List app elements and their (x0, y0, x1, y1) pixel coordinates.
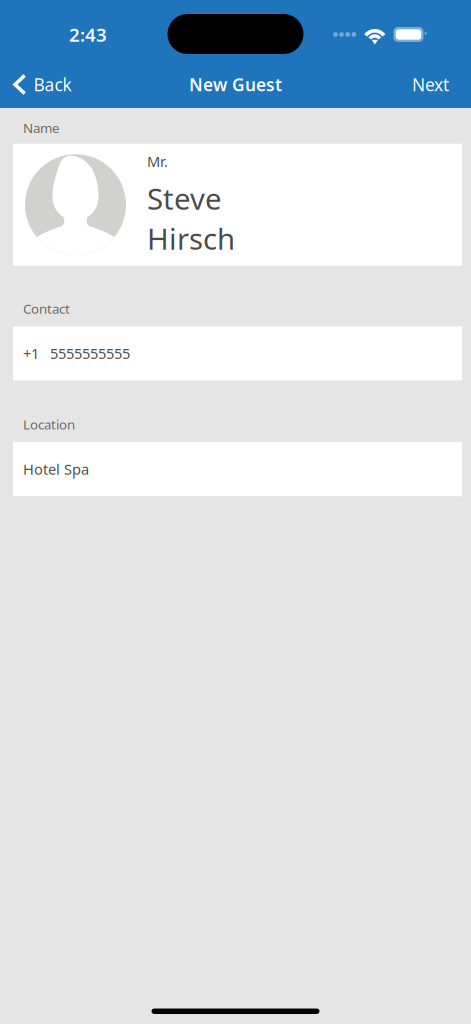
button[interactable]: Back (0, 61, 84, 108)
button[interactable]: +1 (13, 326, 462, 380)
staticText: Contact (23, 300, 70, 317)
staticText: Steve (147, 179, 222, 218)
staticText: Next (412, 73, 449, 96)
staticText: New Guest (189, 73, 282, 96)
staticText: Hirsch (147, 219, 235, 258)
staticText: Location (23, 415, 75, 433)
staticText: +1 (23, 344, 39, 363)
button[interactable]: Mr. (13, 144, 462, 266)
button[interactable]: Next (398, 61, 471, 108)
staticText: Name (23, 119, 60, 137)
staticText: Mr. (147, 151, 168, 171)
staticText: Back (34, 73, 72, 96)
staticText: Hotel Spa (23, 459, 89, 479)
staticText: 2:43 (69, 22, 107, 47)
button[interactable]: Hotel Spa (13, 442, 462, 496)
staticText: 5555555555 (50, 344, 130, 363)
